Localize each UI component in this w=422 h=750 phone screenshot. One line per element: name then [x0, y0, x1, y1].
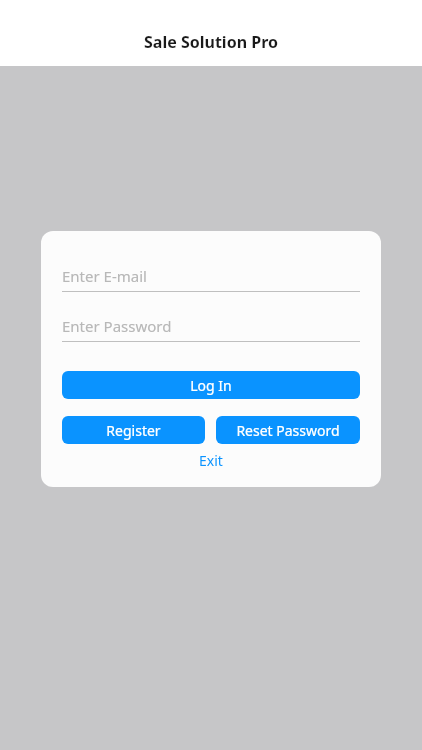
- button[interactable]: Exit: [62, 447, 360, 473]
- staticText: Sale Solution Pro: [144, 31, 278, 53]
- staticText: Exit: [199, 451, 223, 470]
- button[interactable]: Enter E-mail: [62, 261, 360, 292]
- button[interactable]: Enter Password: [62, 311, 360, 342]
- button[interactable]: Log In: [62, 371, 360, 399]
- staticText: Register: [106, 421, 161, 440]
- staticText: Reset Password: [236, 421, 340, 440]
- staticText: Log In: [190, 376, 232, 395]
- staticText: Enter E-mail: [62, 266, 147, 286]
- staticText: Enter Password: [62, 316, 172, 336]
- button[interactable]: Register: [62, 416, 205, 444]
- button[interactable]: Reset Password: [216, 416, 360, 444]
